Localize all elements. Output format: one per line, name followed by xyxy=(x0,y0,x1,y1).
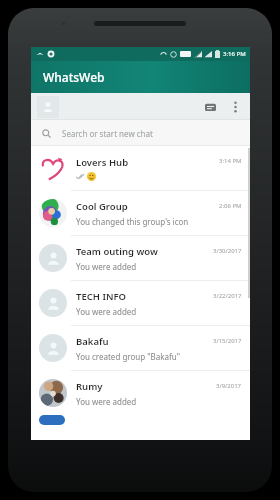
staticText: You changed this group's icon xyxy=(76,216,189,227)
staticText: TECH INFO xyxy=(76,290,127,303)
staticText: You were added xyxy=(76,306,137,317)
button[interactable] xyxy=(31,415,250,425)
staticText: Bakafu xyxy=(76,335,109,348)
staticText: 3/30/2017 xyxy=(213,247,242,255)
button[interactable]: Team outing wow xyxy=(31,236,250,280)
staticText: Rumy xyxy=(76,380,103,393)
button[interactable]: Lovers Hub xyxy=(31,146,250,190)
staticText: 2:06 PM xyxy=(219,202,242,210)
staticText: 3/9/2017 xyxy=(216,382,242,390)
staticText: 3/15/2017 xyxy=(213,337,242,345)
button[interactable]: Profile xyxy=(37,96,59,118)
staticText: Lovers Hub xyxy=(76,156,129,169)
staticText: 3/22/2017 xyxy=(213,292,242,300)
staticText: You were added xyxy=(76,396,137,407)
staticText: You were added xyxy=(76,261,137,272)
staticText: You created group "Bakafu" xyxy=(76,351,180,362)
staticText: Team outing wow xyxy=(76,245,158,258)
staticText: 3:14 PM xyxy=(219,157,242,165)
button[interactable]: Rumy xyxy=(31,371,250,415)
button[interactable]: TECH INFO xyxy=(31,281,250,325)
staticText: WhatsWeb xyxy=(43,69,105,85)
staticText: Search or start new chat xyxy=(62,128,153,139)
button[interactable]: More options xyxy=(226,98,244,116)
button[interactable]: Cool Group xyxy=(31,191,250,235)
button[interactable]: Bakafu xyxy=(31,326,250,370)
button[interactable]: Search or start new chat xyxy=(31,120,250,146)
staticText: Cool Group xyxy=(76,200,128,213)
staticText: 3:16 PM xyxy=(223,50,246,58)
button[interactable]: New chat xyxy=(200,97,220,117)
